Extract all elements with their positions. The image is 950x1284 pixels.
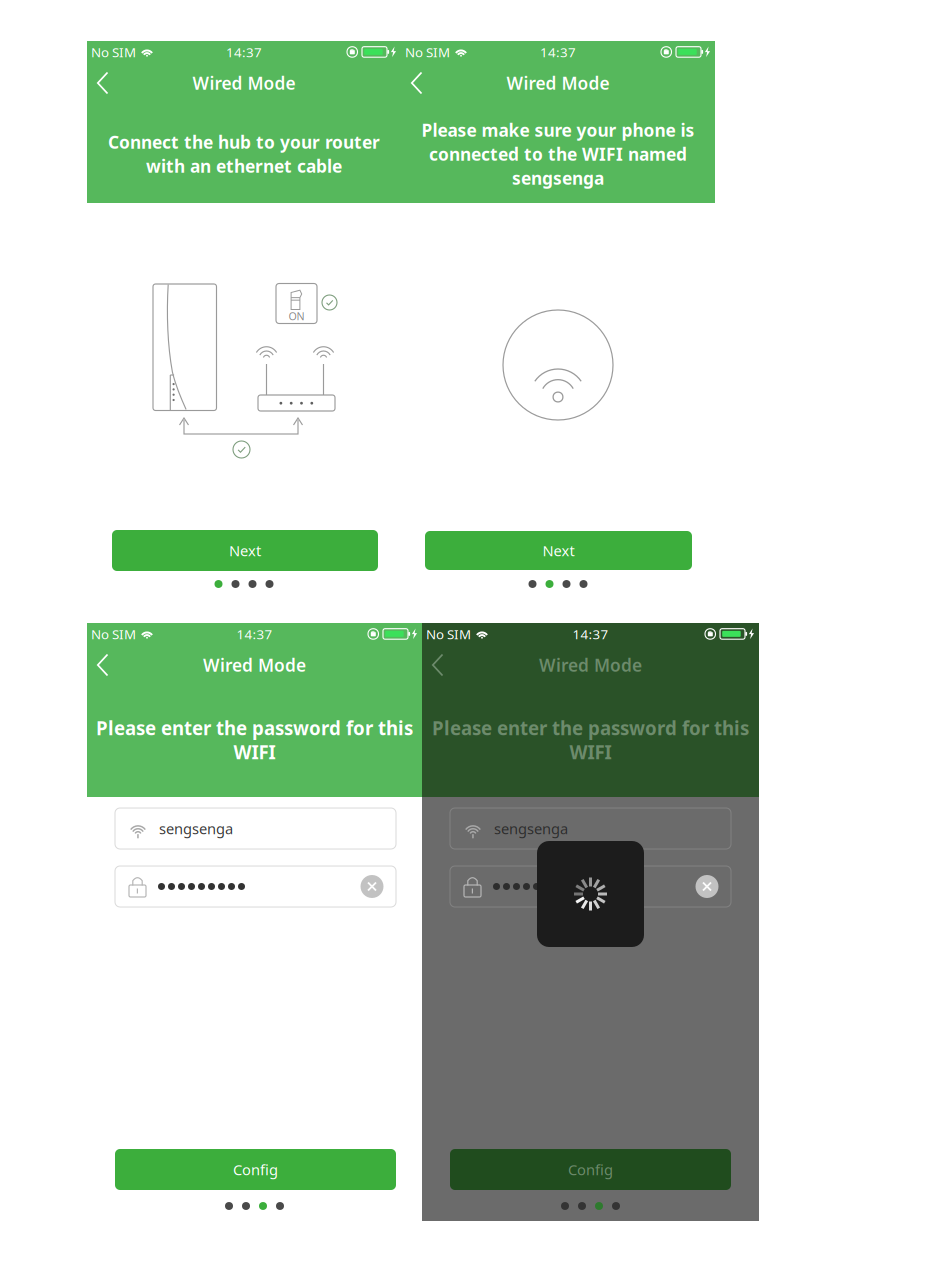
button[interactable]: Clear password: [357, 871, 387, 901]
staticText: WIFI: [569, 740, 611, 764]
staticText: Connect the hub to your router: [108, 130, 380, 153]
staticText: connected to the WIFI named: [429, 142, 687, 165]
button[interactable]: Config: [115, 1149, 396, 1190]
button[interactable]: Back: [87, 68, 119, 98]
staticText: Please make sure your phone is: [421, 118, 694, 141]
button[interactable]: Back: [422, 650, 454, 680]
button[interactable]: Back: [401, 68, 433, 98]
button[interactable]: Back: [87, 650, 119, 680]
button[interactable]: Clear password: [692, 871, 722, 901]
staticText: Wired Mode: [192, 71, 295, 94]
staticText: WIFI: [233, 740, 275, 764]
staticText: Wired Mode: [539, 653, 642, 676]
staticText: 14:37: [572, 625, 608, 643]
staticText: No SIM: [426, 625, 471, 643]
staticText: sengsenga: [159, 819, 233, 838]
staticText: with an ethernet cable: [146, 154, 342, 177]
staticText: Next: [229, 541, 261, 560]
staticText: Next: [542, 541, 574, 560]
button[interactable]: Next: [112, 530, 378, 571]
staticText: sengsenga: [494, 819, 568, 838]
staticText: Please enter the password for this: [432, 716, 749, 740]
staticText: Config: [568, 1160, 613, 1179]
staticText: Wired Mode: [506, 71, 609, 94]
staticText: 14:37: [226, 43, 262, 61]
staticText: No SIM: [91, 43, 136, 61]
staticText: No SIM: [91, 625, 136, 643]
staticText: Wired Mode: [203, 653, 306, 676]
button[interactable]: Next: [425, 531, 692, 570]
staticText: ON: [288, 309, 304, 323]
staticText: 14:37: [236, 625, 272, 643]
staticText: No SIM: [405, 43, 450, 61]
staticText: sengsenga: [512, 166, 604, 189]
staticText: Config: [233, 1160, 278, 1179]
staticText: Please enter the password for this: [96, 716, 413, 740]
staticText: 14:37: [540, 43, 576, 61]
button[interactable]: Config: [450, 1149, 731, 1190]
